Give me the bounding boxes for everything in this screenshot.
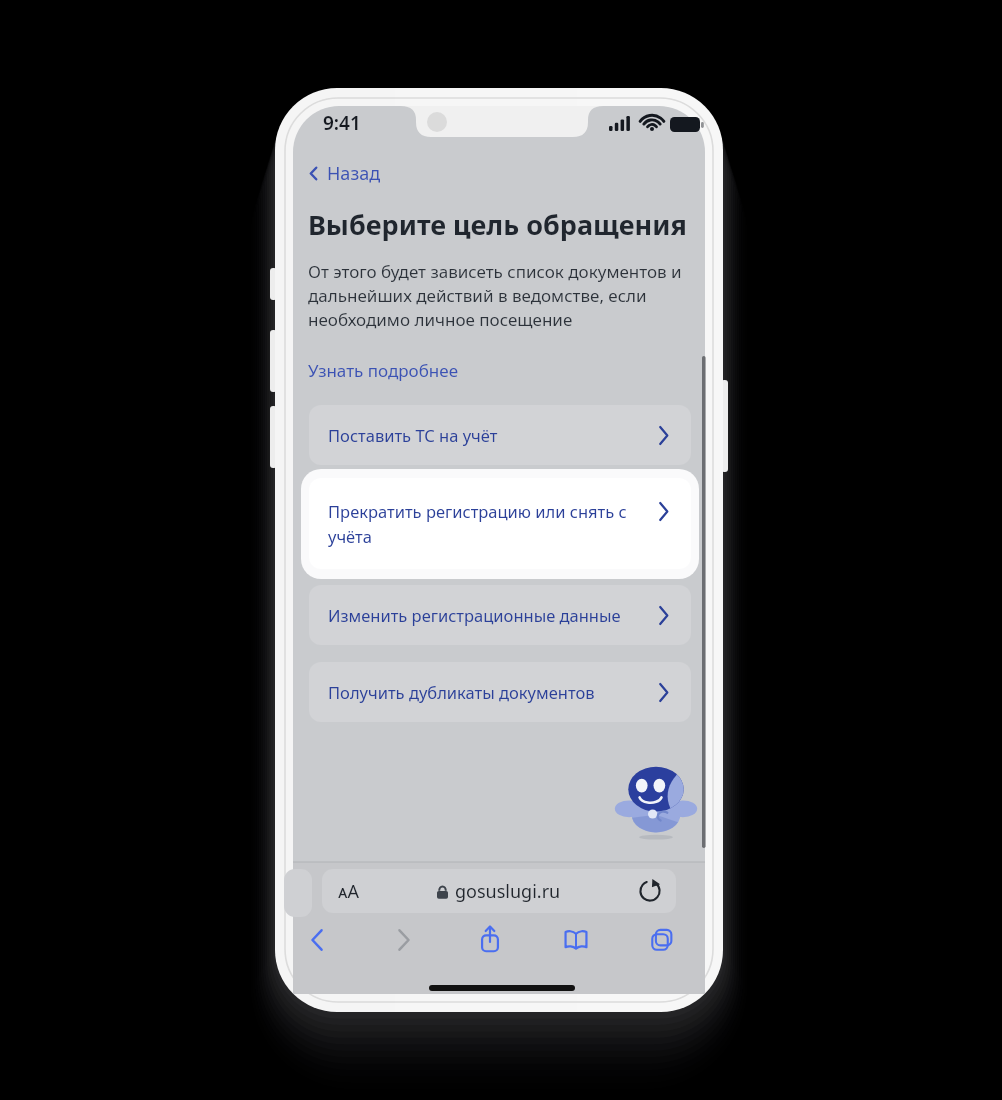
- staticText: Выберите цель обращения: [308, 206, 687, 243]
- staticText: Поставить ТС на учёт: [328, 424, 498, 446]
- staticText: Получить дубликаты документов: [328, 681, 595, 703]
- button[interactable]: Обновить: [638, 879, 662, 903]
- button[interactable]: Назад: [303, 156, 386, 191]
- button[interactable]: Помощник Макс: [614, 762, 698, 842]
- staticText: ᴀA: [338, 879, 359, 904]
- button[interactable]: Получить дубликаты документов: [309, 662, 691, 722]
- button[interactable]: Назад: [299, 922, 335, 958]
- button[interactable]: Прекратить регистрацию или снять с учёта: [309, 478, 691, 569]
- button[interactable]: Поделиться: [472, 921, 508, 957]
- button[interactable]: Вкладки: [644, 922, 680, 958]
- button[interactable]: Вперёд: [386, 922, 422, 958]
- staticText: Прекратить регистрацию или снять с учёта: [328, 500, 633, 548]
- staticText: Изменить регистрационные данные: [328, 604, 621, 626]
- button[interactable]: Узнать подробнее: [303, 355, 464, 386]
- staticText: От этого будет зависеть список документо…: [308, 260, 686, 331]
- button[interactable]: Поставить ТС на учёт: [309, 405, 691, 465]
- staticText: Назад: [327, 161, 381, 186]
- staticText: gosuslugi.ru: [455, 879, 561, 904]
- button[interactable]: Закладки: [558, 922, 594, 958]
- button[interactable]: Изменить регистрационные данные: [309, 585, 691, 645]
- button[interactable]: ᴀA: [322, 869, 676, 913]
- staticText: Узнать подробнее: [308, 359, 459, 382]
- staticText: 9:41: [323, 110, 361, 136]
